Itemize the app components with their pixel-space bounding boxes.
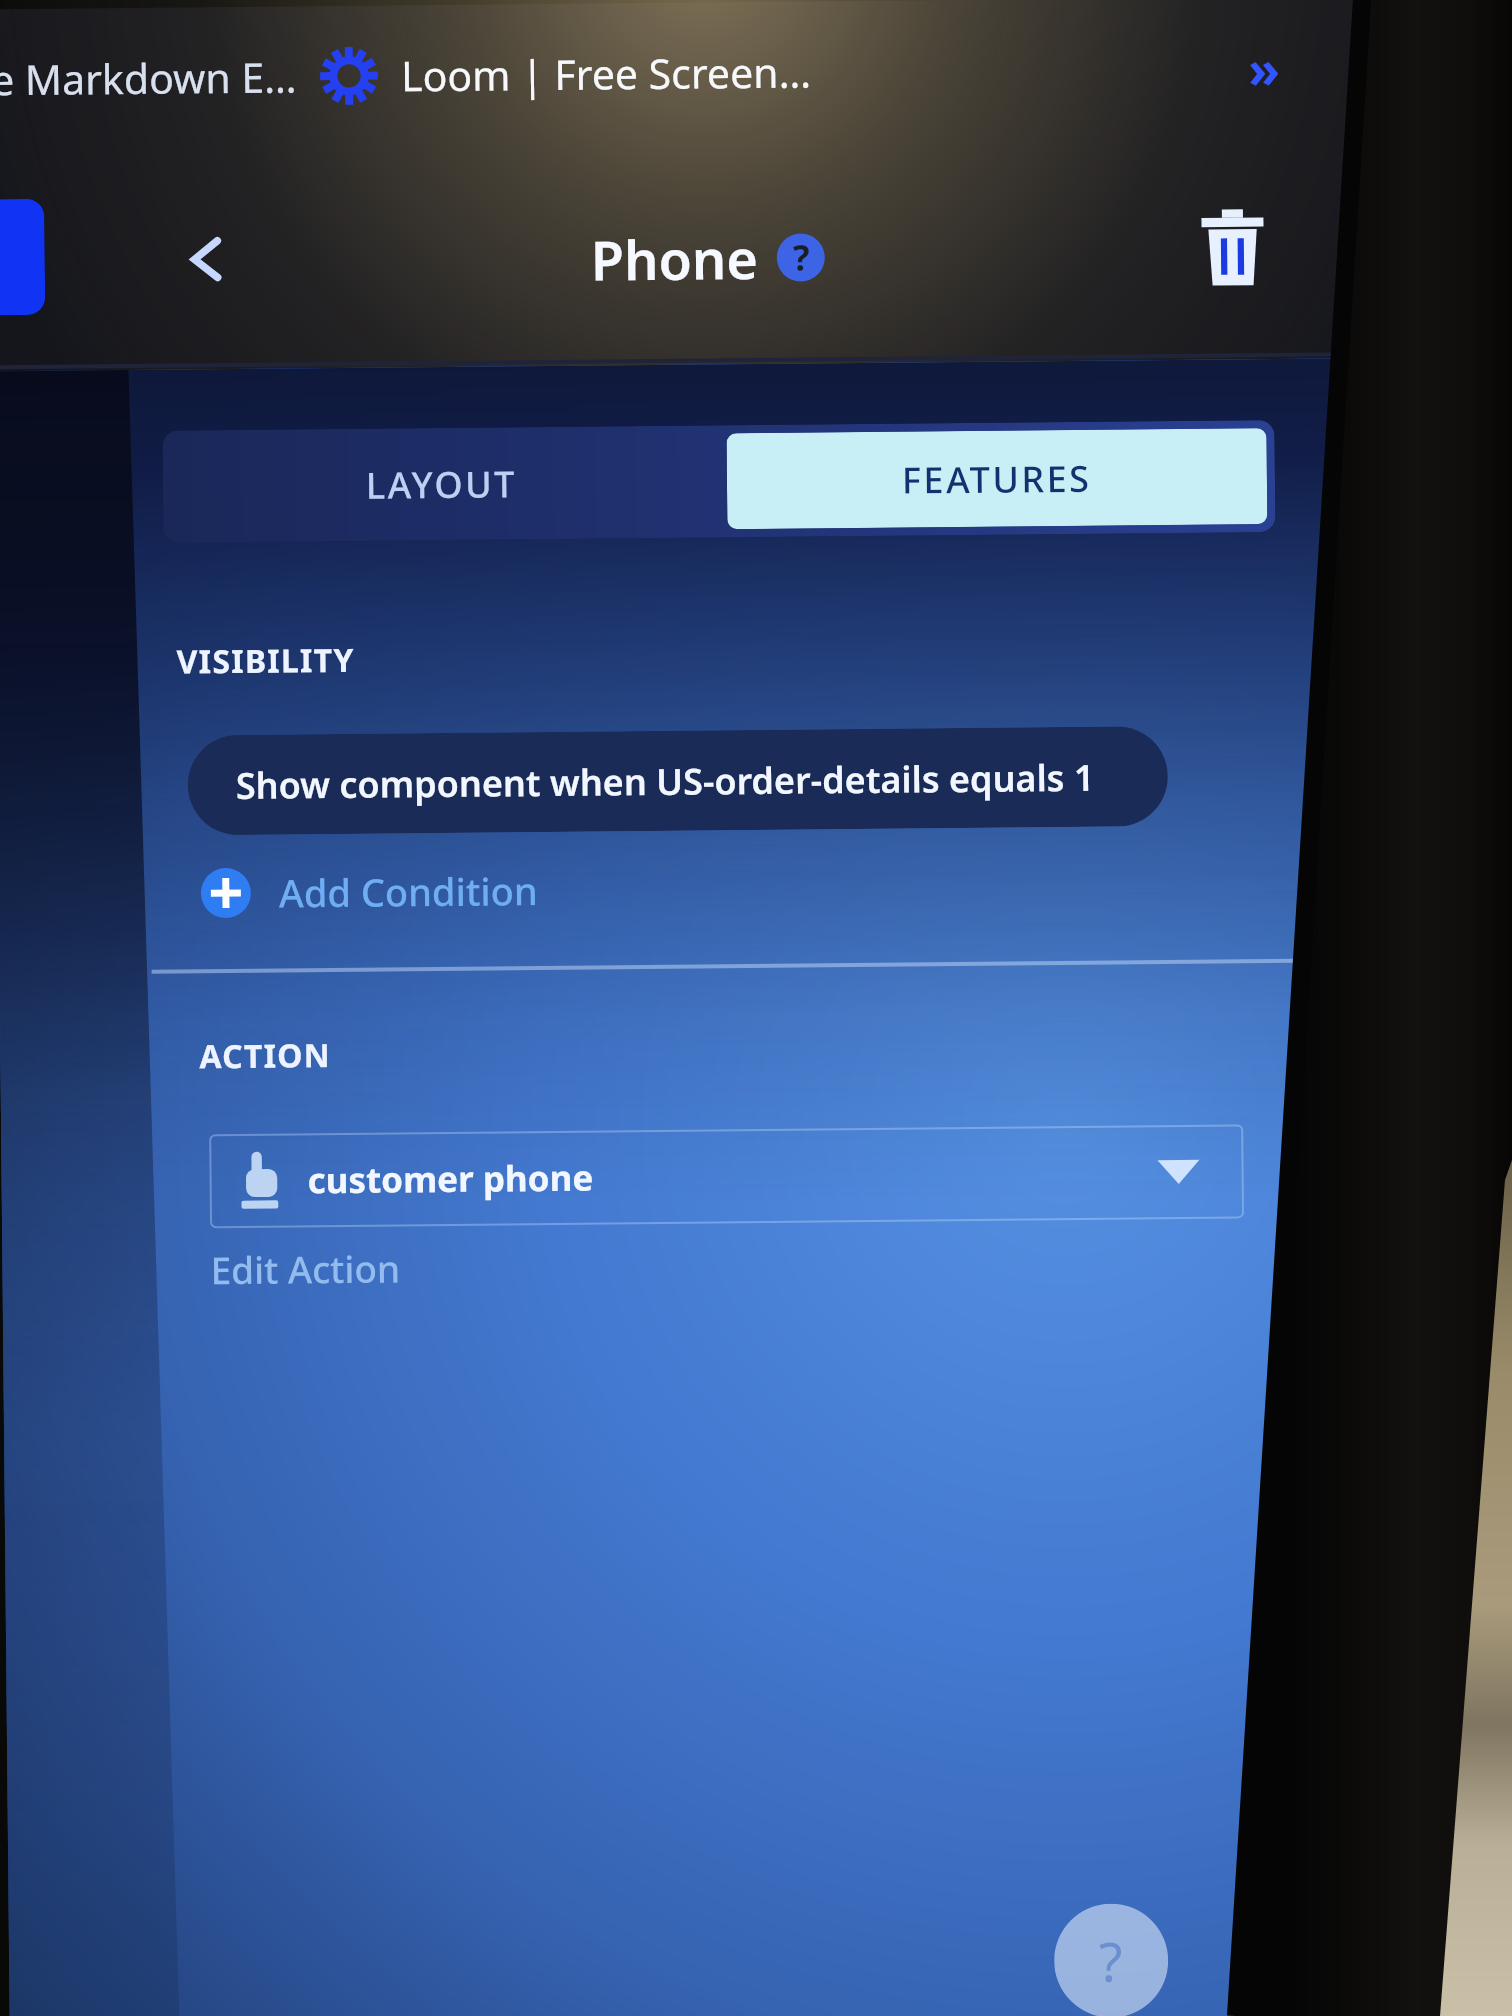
staticText: Phone (590, 221, 759, 296)
button[interactable]: Add Condition (200, 854, 538, 929)
button[interactable]: Delete (1172, 137, 1294, 358)
button[interactable]: Show component when US-order-details equ… (187, 726, 1168, 835)
staticText: » (1248, 32, 1280, 103)
button[interactable]: LAYOUT (162, 425, 719, 543)
button[interactable]: Edit Action (198, 1238, 417, 1300)
staticText: Add Condition (279, 864, 538, 919)
staticText: VISIBILITY (176, 638, 355, 683)
button[interactable]: Back (140, 149, 272, 370)
button[interactable]: FEATURES (726, 428, 1267, 529)
button[interactable]: customer phone (209, 1124, 1244, 1228)
staticText: ? (1099, 1923, 1123, 1998)
button[interactable]: Loom | Free Screen… (400, 0, 812, 146)
staticText: Loom | Free Screen… (401, 43, 811, 103)
staticText: customer phone (307, 1154, 594, 1204)
button[interactable]: Help (777, 233, 825, 282)
staticText: ? (793, 233, 810, 282)
staticText: Edit Action (210, 1242, 401, 1294)
staticText: FEATURES (902, 454, 1092, 505)
staticText: e Markdown E… (0, 48, 297, 107)
button[interactable]: Help (1054, 1903, 1169, 2016)
staticText: ACTION (199, 1033, 332, 1078)
staticText: Show component when US-order-details equ… (236, 753, 1095, 810)
button[interactable]: e Markdown E… (0, 5, 298, 150)
staticText: LAYOUT (366, 459, 517, 510)
button[interactable]: More tabs (1188, 0, 1340, 139)
